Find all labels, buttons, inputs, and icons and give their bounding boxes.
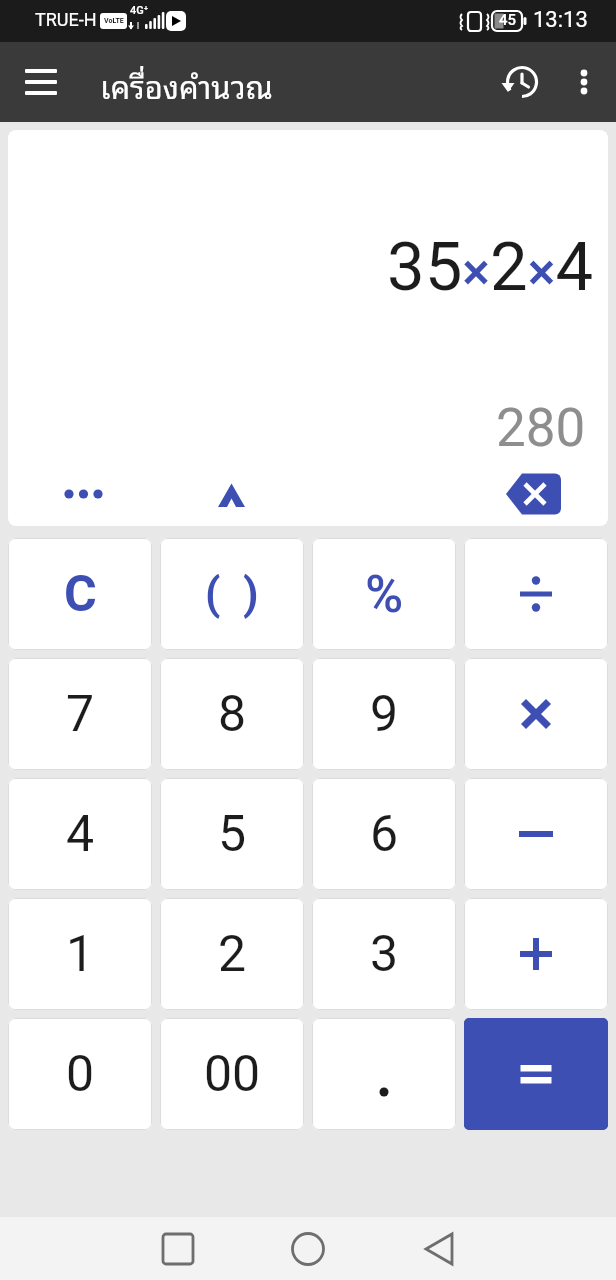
staticText: 9 (370, 685, 399, 744)
staticText: 1 (66, 925, 95, 984)
staticText: 45 (499, 11, 517, 29)
staticText: 4 (66, 805, 95, 864)
staticText: ( ) (205, 568, 259, 620)
staticText: 8 (218, 685, 247, 744)
staticText: เครื่องคำนวณ (100, 60, 273, 110)
staticText: 3 (370, 925, 399, 984)
staticText: % (365, 564, 404, 625)
staticText: 280 (496, 397, 586, 457)
staticText: 2 (218, 925, 247, 984)
staticText: C (64, 565, 97, 624)
staticText: 6 (370, 805, 399, 864)
staticText: VoLTE (104, 17, 124, 25)
staticText: 5 (218, 805, 247, 864)
staticText: 7 (66, 685, 95, 744)
staticText: 00 (204, 1045, 261, 1104)
staticText: 4G⁺ (130, 4, 149, 17)
staticText: 0 (66, 1045, 95, 1104)
staticText: TRUE-H (35, 9, 97, 30)
staticText: 13:13 (533, 7, 588, 33)
staticText: 35×2×4 (387, 228, 594, 307)
